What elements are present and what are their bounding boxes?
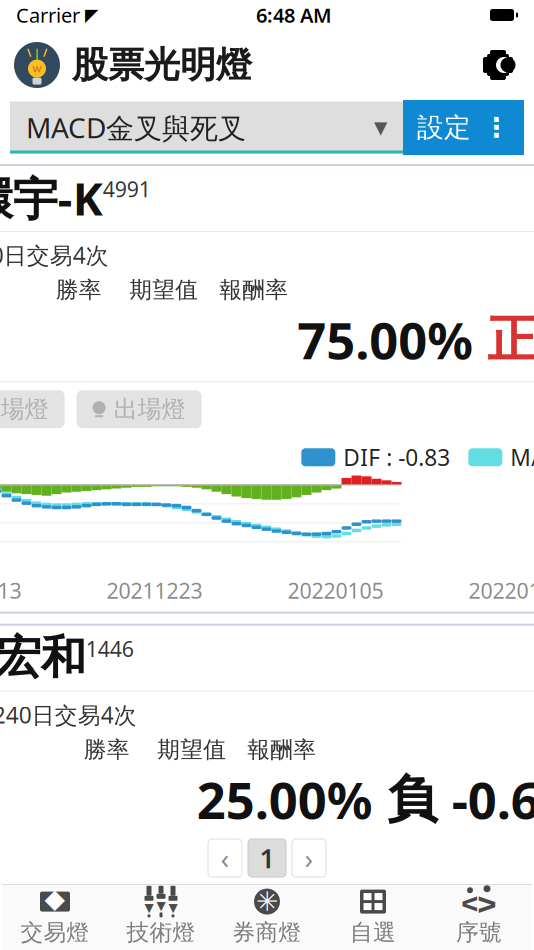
button[interactable]: 進場燈	[0, 850, 93, 888]
staticText: ✳	[256, 886, 278, 917]
staticText: -0.62%	[452, 766, 534, 833]
staticText: W	[32, 62, 41, 75]
staticText: 20220117	[468, 576, 534, 605]
staticText: 序號	[456, 919, 502, 946]
staticText: 20211213	[0, 576, 22, 605]
staticText: 技術燈	[126, 919, 195, 946]
button[interactable]: ✳	[214, 887, 320, 947]
staticText: ⋮	[483, 112, 510, 143]
staticText: 出場燈	[114, 394, 186, 424]
button[interactable]: ᐸ	[426, 887, 532, 947]
staticText: ‹	[220, 839, 229, 877]
staticText: Carrier	[16, 2, 80, 28]
button[interactable]: ▼	[108, 887, 214, 947]
staticText: 勝率	[56, 276, 102, 304]
button[interactable]: ◆	[2, 887, 108, 947]
staticText: 1	[259, 840, 274, 876]
staticText: 25.00%	[197, 766, 373, 833]
button[interactable]: 上一頁	[208, 839, 242, 877]
button[interactable]: MACD金叉與死叉	[10, 101, 403, 153]
staticText: 負	[387, 768, 438, 830]
staticText: 報酬率	[247, 736, 316, 764]
staticText: ▼	[168, 901, 177, 914]
staticText: 券商燈	[232, 919, 301, 946]
staticText: 設定	[417, 111, 471, 144]
staticText: ▼	[156, 899, 165, 912]
button[interactable]: 1	[248, 839, 286, 877]
staticText: 環宇-K	[0, 168, 103, 228]
staticText: ᐸ	[461, 893, 479, 916]
button[interactable]: 切換深色模式	[474, 41, 522, 89]
staticText: ◤	[85, 5, 98, 25]
staticText: \	[27, 45, 31, 60]
button[interactable]: 出場燈	[77, 390, 202, 428]
staticText: 勝率	[84, 736, 130, 764]
staticText: ›	[304, 839, 313, 877]
staticText: ▼	[144, 901, 153, 914]
staticText: 近240日交易4次	[0, 240, 109, 270]
staticText: 報酬率	[219, 276, 288, 304]
staticText: 進場燈	[0, 394, 49, 424]
staticText: 交易燈	[20, 919, 89, 946]
staticText: MACD : -0.92	[510, 442, 534, 472]
staticText: 期望值	[129, 276, 198, 304]
button[interactable]: 自選	[320, 887, 426, 947]
staticText: 6:48 AM	[256, 2, 332, 28]
button[interactable]: 下一頁	[292, 839, 326, 877]
staticText: 宏和	[0, 630, 86, 685]
staticText: 近240日交易4次	[0, 700, 137, 730]
staticText: 20220105	[287, 576, 383, 605]
staticText: MACD金叉與死叉	[26, 109, 246, 146]
staticText: 75.00%	[297, 306, 473, 373]
staticText: 4991	[103, 175, 151, 203]
staticText: 1446	[86, 634, 134, 663]
staticText: DIF : -0.83	[343, 442, 450, 472]
staticText: ◆	[44, 883, 65, 914]
button[interactable]: 設定	[403, 100, 524, 155]
button[interactable]: 出場燈	[105, 850, 230, 888]
staticText: |	[34, 45, 40, 60]
staticText: ▼	[374, 118, 387, 137]
staticText: 20211223	[106, 576, 202, 605]
staticText: 自選	[350, 919, 396, 946]
staticText: 期望值	[157, 736, 226, 764]
button[interactable]: 進場燈	[0, 390, 65, 428]
staticText: 正	[487, 308, 534, 371]
staticText: /	[43, 45, 47, 60]
staticText: 股票光明燈	[72, 43, 252, 87]
staticText: ᐳ	[477, 892, 497, 918]
